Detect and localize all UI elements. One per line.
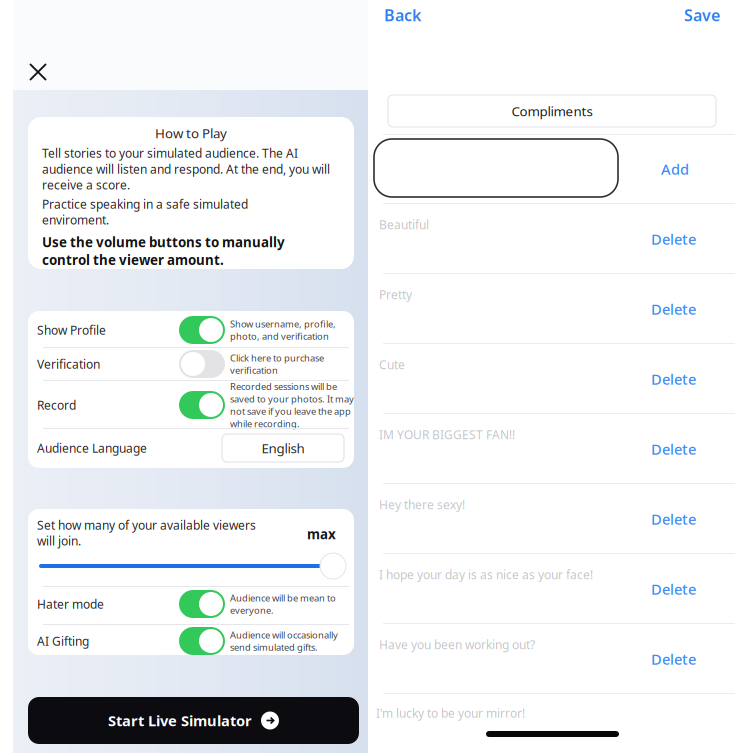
button[interactable]: Delete: [651, 438, 711, 460]
button[interactable]: Save: [664, 4, 720, 26]
button[interactable]: Delete: [651, 508, 711, 530]
staticText: Start Live Simulator: [108, 711, 252, 730]
button[interactable]: Delete: [651, 228, 711, 250]
staticText: Pretty: [379, 286, 412, 302]
staticText: Delete: [651, 649, 696, 669]
button[interactable]: Delete: [651, 298, 711, 320]
staticText: Audience will be mean to everyone.: [230, 592, 336, 616]
staticText: Verification: [37, 356, 100, 372]
staticText: I hope your day is as nice as your face!: [379, 566, 593, 582]
staticText: Have you been working out?: [379, 636, 535, 652]
staticText: Set how many of your available viewers w…: [37, 517, 256, 549]
staticText: Audience Language: [37, 440, 147, 456]
staticText: Delete: [651, 439, 696, 459]
staticText: Show Profile: [37, 322, 106, 338]
staticText: IM YOUR BIGGEST FAN!!: [379, 426, 515, 442]
staticText: Hey there sexy!: [379, 496, 465, 512]
staticText: How to Play: [155, 124, 227, 142]
button[interactable]: Close: [20, 54, 56, 90]
button[interactable]: English: [222, 434, 344, 462]
button[interactable]: Delete: [651, 368, 711, 390]
staticText: Beautiful: [379, 216, 429, 232]
staticText: Audience will occasionally send simulate…: [230, 629, 338, 653]
staticText: Use the volume buttons to manually contr…: [42, 233, 285, 269]
staticText: Delete: [651, 369, 696, 389]
staticText: AI Gifting: [37, 633, 89, 649]
staticText: Add: [661, 159, 689, 179]
staticText: Save: [684, 4, 720, 26]
staticText: I'm lucky to be your mirror!: [376, 705, 525, 721]
staticText: Delete: [651, 509, 696, 529]
staticText: Click here to purchase verification: [230, 352, 324, 376]
staticText: Record: [37, 397, 76, 413]
staticText: Compliments: [511, 102, 592, 120]
staticText: Practice speaking in a safe simulated en…: [42, 196, 248, 228]
staticText: Delete: [651, 299, 696, 319]
staticText: English: [261, 439, 304, 457]
button[interactable]: Delete: [651, 578, 711, 600]
staticText: max: [307, 525, 336, 543]
staticText: Show username, profile, photo, and verif…: [230, 318, 336, 342]
staticText: Recorded sessions will be saved to your …: [230, 380, 354, 430]
staticText: Tell stories to your simulated audience.…: [42, 145, 330, 193]
staticText: Back: [384, 4, 421, 26]
staticText: Delete: [651, 579, 696, 599]
staticText: Hater mode: [37, 596, 104, 612]
staticText: Cute: [379, 356, 405, 372]
button[interactable]: Add: [661, 158, 705, 180]
button[interactable]: Delete: [651, 648, 711, 670]
staticText: Delete: [651, 229, 696, 249]
button[interactable]: Compliments: [388, 95, 716, 127]
button[interactable]: Start Live Simulator: [28, 697, 359, 744]
button[interactable]: Back: [384, 4, 440, 26]
